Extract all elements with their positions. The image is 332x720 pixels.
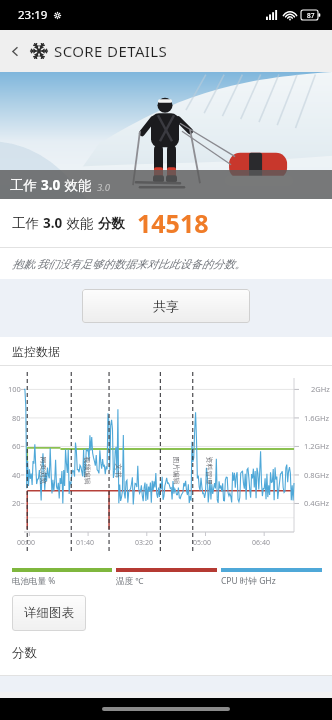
staticText: 3.0: [41, 176, 61, 194]
staticText: 14518: [137, 206, 209, 240]
button[interactable]: 共享: [82, 289, 250, 323]
staticText: 1.2GHz: [304, 441, 330, 451]
staticText: 01:40: [76, 538, 94, 548]
staticText: 40: [12, 470, 21, 480]
staticText: 温度 ℃: [116, 575, 144, 587]
button[interactable]: Back: [0, 30, 30, 72]
staticText: 60: [12, 441, 21, 451]
staticText: 工作: [12, 214, 43, 232]
staticText: 100: [8, 384, 21, 394]
staticText: 1.6GHz: [304, 413, 330, 423]
staticText: 效能: [61, 176, 92, 194]
staticText: 工作: [10, 176, 41, 194]
staticText: 图片编辑: [171, 456, 180, 484]
staticText: 分数: [98, 215, 125, 232]
staticText: 87: [307, 11, 315, 20]
staticText: 20: [12, 498, 21, 508]
staticText: 网页浏览: [38, 456, 47, 484]
staticText: 0.8GHz: [304, 470, 330, 480]
staticText: 00:00: [17, 538, 35, 548]
staticText: CPU 时钟 GHz: [221, 575, 276, 587]
staticText: 3.0: [97, 181, 110, 194]
staticText: 文书: [113, 463, 122, 477]
staticText: 监控数据: [12, 344, 60, 359]
staticText: 电池电量 %: [12, 575, 56, 587]
staticText: 共享: [153, 298, 179, 314]
staticText: 23:19: [18, 7, 48, 23]
staticText: 05:00: [193, 538, 211, 548]
staticText: 03:20: [135, 538, 153, 548]
staticText: 2GHz: [311, 384, 330, 394]
staticText: 80: [12, 413, 21, 423]
staticText: 抱歉,我们没有足够的数据来对比此设备的分数。: [12, 256, 246, 271]
button[interactable]: 详细图表: [12, 595, 86, 631]
staticText: 资料管理: [204, 456, 213, 484]
staticText: 效能: [63, 214, 98, 232]
staticText: 详细图表: [24, 605, 74, 621]
staticText: 视频编辑: [82, 456, 91, 484]
staticText: 06:40: [252, 538, 270, 548]
staticText: 分数: [12, 645, 37, 661]
staticText: 3.0: [43, 214, 63, 232]
staticText: 0.4GHz: [304, 498, 330, 508]
staticText: SCORE DETAILS: [54, 41, 168, 61]
